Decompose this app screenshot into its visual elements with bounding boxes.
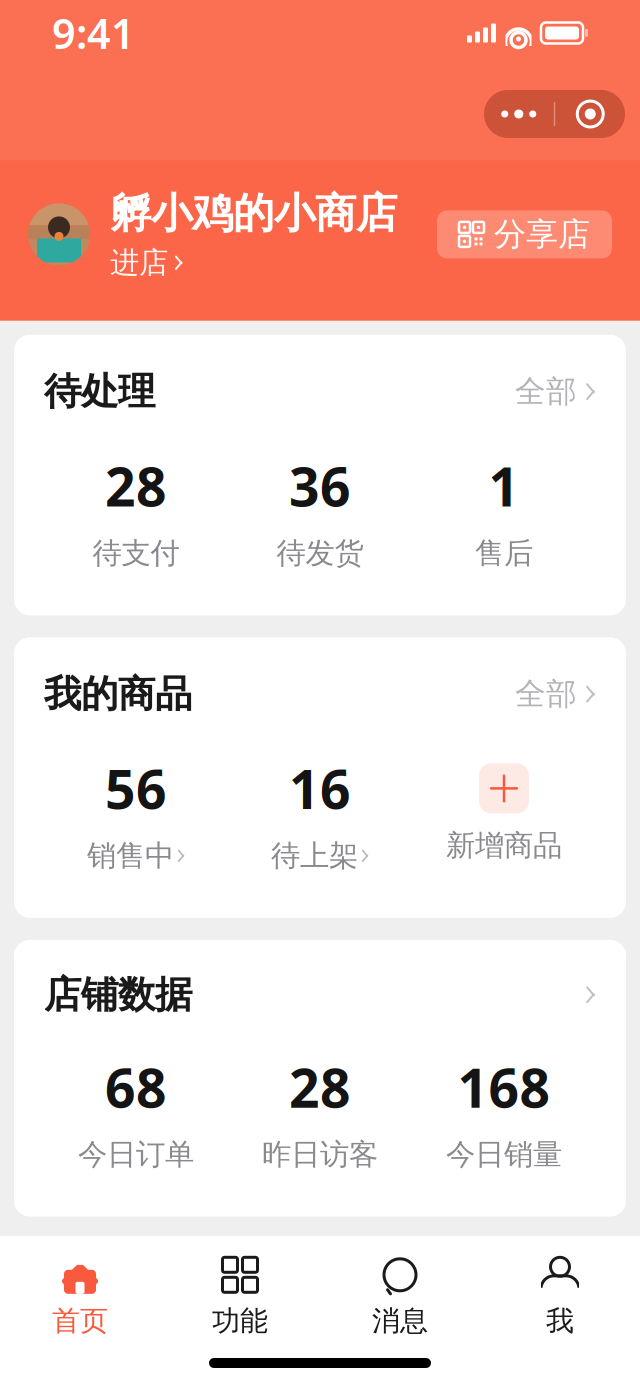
button[interactable]: 孵小鸡的小商店 [28, 188, 397, 281]
staticText: 我 [546, 1304, 574, 1338]
staticText: 我的商品 [44, 671, 192, 717]
staticText: 待发货 [276, 535, 363, 571]
staticText: 待支付 [92, 535, 179, 571]
staticText: 昨日访客 [262, 1136, 378, 1172]
staticText: 售后 [475, 535, 533, 571]
button[interactable]: 我 [480, 1246, 640, 1346]
staticText: 常见问题 [44, 1262, 192, 1307]
staticText: 首页 [52, 1304, 108, 1338]
staticText: 销售中 [87, 838, 174, 874]
button[interactable]: 56 [44, 753, 228, 874]
staticText: 今日销量 [446, 1136, 562, 1172]
button[interactable]: 28 [44, 450, 228, 571]
button[interactable]: 分享店 [437, 210, 612, 258]
button[interactable]: 16 [228, 753, 412, 874]
button[interactable]: 36 [228, 450, 412, 571]
button[interactable]: 全部 [499, 669, 596, 719]
button[interactable]: More [569, 979, 596, 1011]
staticText: 全部 [515, 675, 577, 713]
staticText: 分享店 [494, 215, 590, 254]
button[interactable]: Close [555, 90, 625, 138]
staticText: 56 [105, 753, 167, 824]
button[interactable]: 全部 [499, 367, 596, 416]
button[interactable]: 首页 [0, 1246, 160, 1346]
button[interactable]: 功能 [160, 1246, 320, 1346]
staticText: 新增商品 [446, 827, 562, 863]
staticText: 进店 [110, 245, 168, 281]
staticText: 待处理 [44, 369, 155, 415]
staticText: 店铺数据 [44, 972, 192, 1018]
staticText: 9:41 [52, 6, 135, 60]
staticText: 消息 [372, 1304, 428, 1338]
button[interactable]: 新增商品 [412, 763, 596, 863]
staticText: 168 [457, 1052, 550, 1122]
staticText: 孵小鸡的小商店 [110, 188, 397, 239]
button[interactable]: 消息 [320, 1246, 480, 1346]
button[interactable]: More [484, 90, 554, 138]
staticText: 16 [289, 753, 351, 824]
staticText: 1 [488, 450, 519, 521]
button[interactable]: 1 [412, 450, 596, 571]
staticText: 待上架 [271, 838, 358, 874]
staticText: 功能 [212, 1304, 268, 1338]
staticText: 68 [105, 1052, 167, 1122]
button[interactable]: 常见问题 [14, 1238, 626, 1330]
staticText: 36 [289, 450, 351, 521]
staticText: 28 [105, 450, 167, 521]
staticText: 28 [289, 1052, 351, 1122]
staticText: 今日订单 [78, 1136, 194, 1172]
staticText: 全部 [515, 373, 577, 410]
